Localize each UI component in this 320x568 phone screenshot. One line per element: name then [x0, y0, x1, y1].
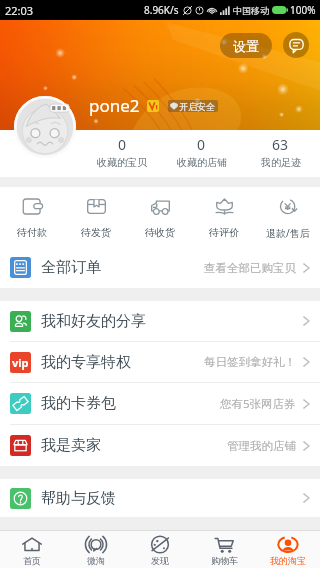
button[interactable]: 全部订单: [0, 247, 320, 288]
staticText: 收藏的宝贝: [97, 156, 147, 169]
button[interactable]: 待发货: [64, 187, 128, 247]
button[interactable]: 我的卡券包: [0, 383, 320, 424]
button[interactable]: 0: [82, 130, 162, 177]
button[interactable]: 微淘: [64, 531, 128, 568]
staticText: 设置: [233, 38, 259, 54]
staticText: 我的卡券包: [41, 394, 116, 413]
staticText: 发现: [151, 555, 169, 566]
button[interactable]: 购物车: [192, 531, 256, 568]
staticText: pone2: [89, 94, 140, 117]
button[interactable]: vip: [0, 342, 320, 382]
staticText: 每日签到拿好礼！: [204, 355, 296, 369]
staticText: vip: [12, 355, 29, 370]
button[interactable]: 消息: [283, 32, 309, 58]
button[interactable]: 待评价: [192, 187, 256, 247]
button[interactable]: 我是卖家: [0, 425, 320, 466]
staticText: 100%: [290, 3, 316, 17]
staticText: 0: [197, 135, 206, 154]
button[interactable]: 待付款: [0, 187, 64, 247]
staticText: 待评价: [209, 226, 239, 239]
staticText: 我是卖家: [41, 436, 101, 455]
staticText: 购物车: [211, 555, 238, 566]
staticText: 我的淘宝: [270, 555, 306, 566]
button[interactable]: 发现: [128, 531, 192, 568]
button[interactable]: 我和好友的分享: [0, 301, 320, 341]
staticText: 待付款: [17, 226, 47, 239]
staticText: 待收货: [145, 226, 175, 239]
button[interactable]: 头像: [14, 96, 76, 158]
button[interactable]: 0: [162, 130, 241, 177]
staticText: 待发货: [81, 226, 111, 239]
staticText: 0: [118, 135, 127, 154]
button[interactable]: 退款/售后: [256, 187, 320, 247]
staticText: 退款/售后: [266, 226, 310, 240]
staticText: 中国移动: [233, 5, 269, 16]
button[interactable]: 待收货: [128, 187, 192, 247]
staticText: 管理我的店铺: [227, 439, 296, 453]
staticText: 收藏的店铺: [177, 156, 227, 169]
staticText: 8.96K/s: [144, 3, 179, 17]
staticText: 首页: [23, 555, 41, 566]
staticText: 全部订单: [41, 258, 101, 277]
staticText: 我的足迹: [261, 156, 301, 169]
staticText: 微淘: [87, 555, 105, 566]
staticText: 帮助与反馈: [41, 489, 116, 508]
staticText: 我的专享特权: [41, 353, 131, 372]
button[interactable]: 会员等级: [147, 100, 159, 112]
staticText: 63: [272, 135, 289, 154]
button[interactable]: 帮助与反馈: [0, 479, 320, 517]
button[interactable]: 首页: [0, 531, 64, 568]
button[interactable]: 设置: [220, 33, 272, 58]
staticText: 查看全部已购宝贝: [204, 261, 296, 275]
staticText: 22:03: [5, 3, 34, 18]
staticText: 我和好友的分享: [41, 312, 146, 331]
button[interactable]: 开启安全: [168, 100, 218, 112]
staticText: 开启安全: [179, 101, 215, 112]
button[interactable]: 63: [241, 130, 320, 177]
staticText: 您有5张网店券: [220, 396, 296, 412]
button[interactable]: 我的淘宝: [256, 531, 320, 568]
